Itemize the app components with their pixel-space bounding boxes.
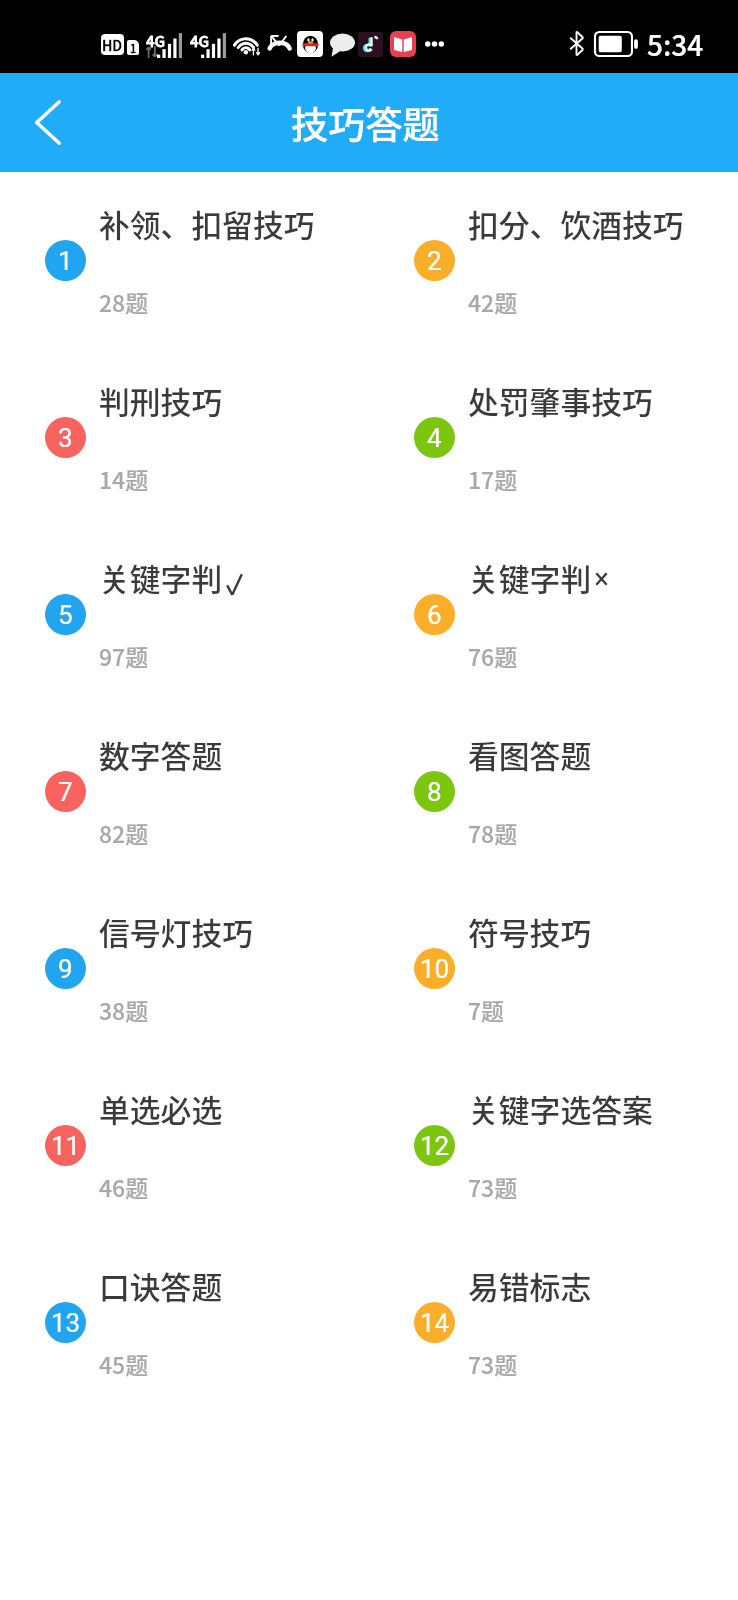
staticText: 3	[58, 423, 73, 453]
staticText: 1	[58, 246, 73, 276]
staticText: 73题	[468, 1170, 518, 1203]
staticText: 10	[420, 954, 450, 984]
staticText: 判刑技巧	[99, 378, 223, 423]
button[interactable]: 2	[369, 172, 738, 289]
staticText: HD	[102, 35, 123, 55]
staticText: 42题	[468, 285, 518, 318]
staticText: 关键字选答案	[468, 1086, 653, 1131]
button[interactable]: 10	[369, 880, 738, 997]
staticText: 13	[51, 1308, 81, 1338]
staticText: 关键字判	[468, 555, 592, 600]
staticText: 14	[420, 1308, 450, 1338]
staticText: 76题	[468, 639, 518, 672]
staticText: 5	[58, 600, 73, 630]
staticText: 处罚肇事技巧	[468, 378, 653, 423]
button[interactable]: 1	[0, 172, 369, 289]
staticText: 符号技巧	[468, 909, 592, 954]
staticText: 4	[427, 423, 442, 453]
staticText: 11	[51, 1131, 81, 1161]
staticText: 17题	[468, 462, 518, 495]
button[interactable]: 3	[0, 349, 369, 466]
staticText: 4G	[146, 30, 166, 52]
staticText: 9	[58, 954, 73, 984]
staticText: 口诀答题	[99, 1263, 223, 1308]
staticText: 5:34	[647, 24, 704, 65]
button[interactable]: 14	[369, 1234, 738, 1351]
staticText: 46题	[99, 1170, 149, 1203]
staticText: 73题	[468, 1347, 518, 1380]
staticText: 8	[427, 777, 442, 807]
staticText: 45题	[99, 1347, 149, 1380]
staticText: 数字答题	[99, 732, 223, 777]
staticText: 4G	[190, 30, 210, 52]
button[interactable]: 5	[0, 526, 369, 643]
staticText: 7	[58, 777, 73, 807]
staticText: 单选必选	[99, 1086, 223, 1131]
button[interactable]: Back	[0, 73, 90, 172]
button[interactable]: 9	[0, 880, 369, 997]
staticText: 关键字判	[99, 555, 223, 600]
staticText: 6	[427, 600, 442, 630]
staticText: 14题	[99, 462, 149, 495]
button[interactable]: 8	[369, 703, 738, 820]
button[interactable]: 6	[369, 526, 738, 643]
staticText: 补领、扣留技巧	[99, 201, 315, 246]
staticText: 82题	[99, 816, 149, 849]
staticText: 97题	[99, 639, 149, 672]
staticText: 12	[420, 1131, 450, 1161]
staticText: 28题	[99, 285, 149, 318]
button[interactable]: 11	[0, 1057, 369, 1174]
staticText: 易错标志	[468, 1263, 592, 1308]
staticText: 38题	[99, 993, 149, 1026]
button[interactable]: 7	[0, 703, 369, 820]
staticText: 78题	[468, 816, 518, 849]
staticText: 2	[427, 246, 442, 276]
staticText: 信号灯技巧	[99, 909, 253, 954]
button[interactable]: 12	[369, 1057, 738, 1174]
staticText: 扣分、饮酒技巧	[468, 201, 684, 246]
staticText: 7题	[468, 993, 505, 1026]
staticText: 1	[130, 40, 137, 55]
staticText: 看图答题	[468, 732, 592, 777]
staticText: 技巧答题	[291, 96, 440, 150]
button[interactable]: 13	[0, 1234, 369, 1351]
button[interactable]: 4	[369, 349, 738, 466]
